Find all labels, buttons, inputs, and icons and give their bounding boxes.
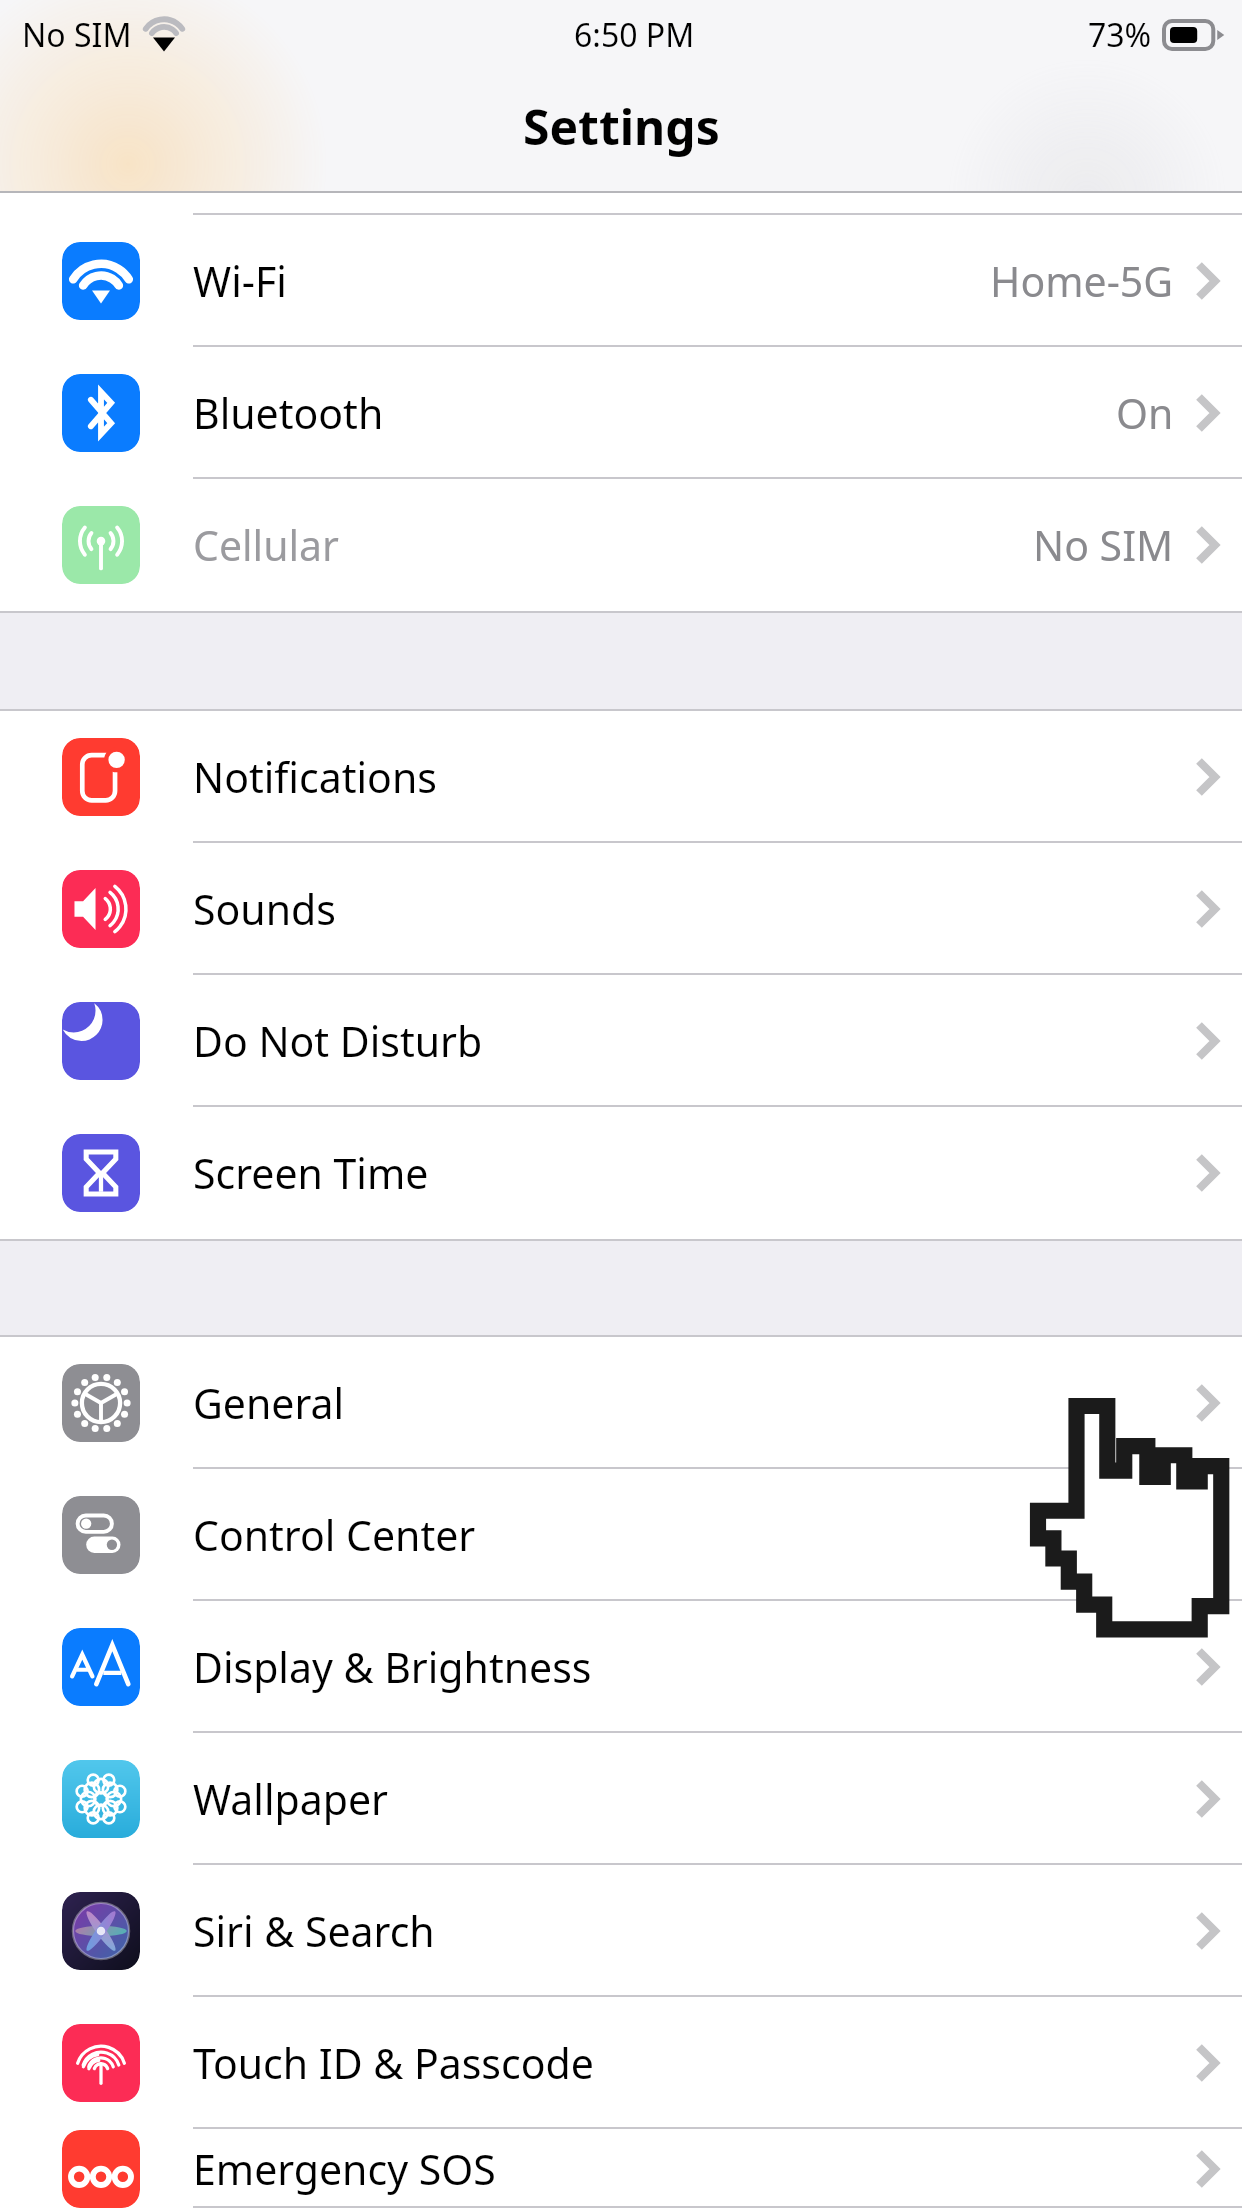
button[interactable]: Cellular bbox=[0, 479, 1242, 611]
button[interactable]: Emergency SOS bbox=[0, 2129, 1242, 2208]
staticText: Display & Brightness bbox=[193, 1639, 592, 1695]
staticText: Wallpaper bbox=[193, 1771, 388, 1827]
button[interactable]: Sounds bbox=[0, 843, 1242, 975]
staticText: Screen Time bbox=[193, 1145, 429, 1201]
staticText: On bbox=[1116, 385, 1174, 441]
staticText: Home-5G bbox=[990, 253, 1174, 309]
button[interactable]: Notifications bbox=[0, 711, 1242, 843]
staticText: Control Center bbox=[193, 1507, 476, 1563]
button[interactable]: General bbox=[0, 1337, 1242, 1469]
button[interactable]: Display & Brightness bbox=[0, 1601, 1242, 1733]
button[interactable]: Screen Time bbox=[0, 1107, 1242, 1239]
staticText: Touch ID & Passcode bbox=[193, 2035, 594, 2091]
staticText: Do Not Disturb bbox=[193, 1013, 483, 1069]
button[interactable]: Wi-Fi bbox=[0, 215, 1242, 347]
staticText: Cellular bbox=[193, 517, 340, 573]
button[interactable]: Touch ID & Passcode bbox=[0, 1997, 1242, 2129]
button[interactable]: Control Center bbox=[0, 1469, 1242, 1601]
staticText: Emergency SOS bbox=[193, 2141, 496, 2197]
button[interactable]: Do Not Disturb bbox=[0, 975, 1242, 1107]
staticText: Sounds bbox=[193, 881, 336, 937]
staticText: Notifications bbox=[193, 749, 437, 805]
staticText: Bluetooth bbox=[193, 385, 384, 441]
button[interactable]: Siri & Search bbox=[0, 1865, 1242, 1997]
staticText: Siri & Search bbox=[193, 1903, 435, 1959]
staticText: General bbox=[193, 1375, 345, 1431]
staticText: No SIM bbox=[1033, 517, 1174, 573]
staticText: Wi-Fi bbox=[193, 253, 287, 309]
staticText: 73% bbox=[1088, 13, 1152, 57]
button[interactable]: Wallpaper bbox=[0, 1733, 1242, 1865]
button[interactable]: Bluetooth bbox=[0, 347, 1242, 479]
staticText: No SIM bbox=[22, 13, 132, 57]
staticText: 6:50 PM bbox=[574, 13, 695, 57]
other: Pointer bbox=[0, 0, 1242, 2208]
staticText: Settings bbox=[523, 94, 720, 159]
